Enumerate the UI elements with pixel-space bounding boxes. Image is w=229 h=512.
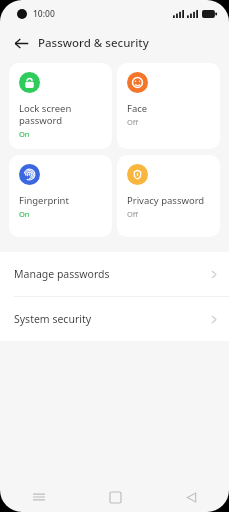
button[interactable]: Face [117, 63, 220, 149]
button[interactable]: Manage passwords [0, 252, 229, 296]
staticText: 10:00 [33, 8, 55, 20]
button[interactable]: System security [0, 297, 229, 341]
button[interactable]: Back [153, 482, 229, 512]
staticText: Face [127, 102, 148, 115]
staticText: On [19, 209, 30, 219]
staticText: Off [127, 117, 139, 127]
staticText: Lock screen password [19, 102, 72, 127]
button[interactable]: Home [77, 482, 153, 512]
button[interactable]: Privacy password [117, 155, 220, 237]
staticText: Privacy password [127, 194, 205, 207]
button[interactable]: Fingerprint [9, 155, 112, 237]
staticText: On [19, 129, 30, 139]
staticText: Password & security [38, 35, 149, 51]
button[interactable]: Back [8, 30, 34, 56]
button[interactable]: Lock screen password [9, 63, 112, 149]
staticText: Manage passwords [14, 267, 110, 281]
staticText: Fingerprint [19, 194, 69, 207]
staticText: Off [127, 209, 139, 219]
staticText: System security [14, 312, 92, 326]
button[interactable]: Recents [0, 482, 77, 512]
